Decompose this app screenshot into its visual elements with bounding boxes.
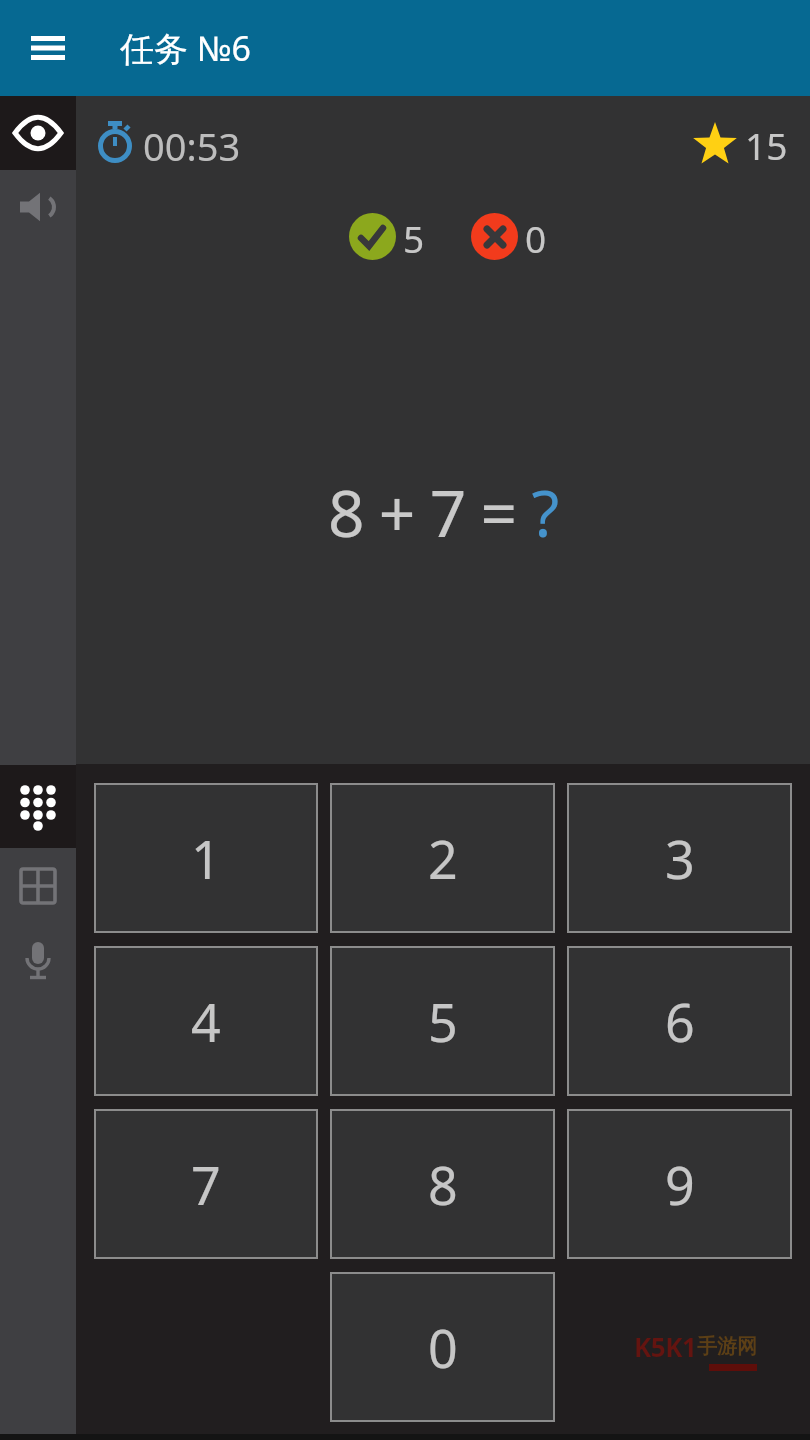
- staticText: 00:53: [143, 120, 241, 164]
- staticText: 7: [191, 1149, 221, 1220]
- button[interactable]: [0, 848, 76, 924]
- staticText: 手游网: [697, 1334, 757, 1359]
- staticText: 0: [428, 1312, 458, 1383]
- button[interactable]: [0, 765, 76, 848]
- button[interactable]: 2: [331, 784, 554, 932]
- button[interactable]: 1: [95, 784, 317, 932]
- staticText: 0: [525, 213, 547, 260]
- staticText: 3: [665, 823, 695, 894]
- staticText: 1: [191, 823, 221, 894]
- button[interactable]: 6: [568, 947, 791, 1095]
- staticText: 5: [428, 986, 458, 1057]
- staticText: K5K1: [634, 1329, 697, 1364]
- button[interactable]: [0, 96, 76, 170]
- staticText: 任务 №6: [120, 25, 251, 71]
- button[interactable]: [0, 924, 76, 1000]
- staticText: 4: [191, 986, 221, 1057]
- button[interactable]: 9: [568, 1110, 791, 1258]
- button[interactable]: 0: [331, 1273, 554, 1421]
- button[interactable]: 3: [568, 784, 791, 932]
- button[interactable]: [0, 0, 76, 96]
- staticText: 8: [428, 1149, 458, 1220]
- button[interactable]: 5: [331, 947, 554, 1095]
- staticText: 6: [665, 986, 695, 1057]
- staticText: 9: [665, 1149, 695, 1220]
- staticText: 2: [428, 823, 458, 894]
- button[interactable]: 7: [95, 1110, 317, 1258]
- staticText: 5: [403, 213, 425, 260]
- button[interactable]: 8: [331, 1110, 554, 1258]
- staticText: 8 + 7 = ?: [328, 469, 558, 556]
- staticText: 15: [745, 120, 788, 164]
- button[interactable]: [0, 170, 76, 244]
- button[interactable]: 4: [95, 947, 317, 1095]
